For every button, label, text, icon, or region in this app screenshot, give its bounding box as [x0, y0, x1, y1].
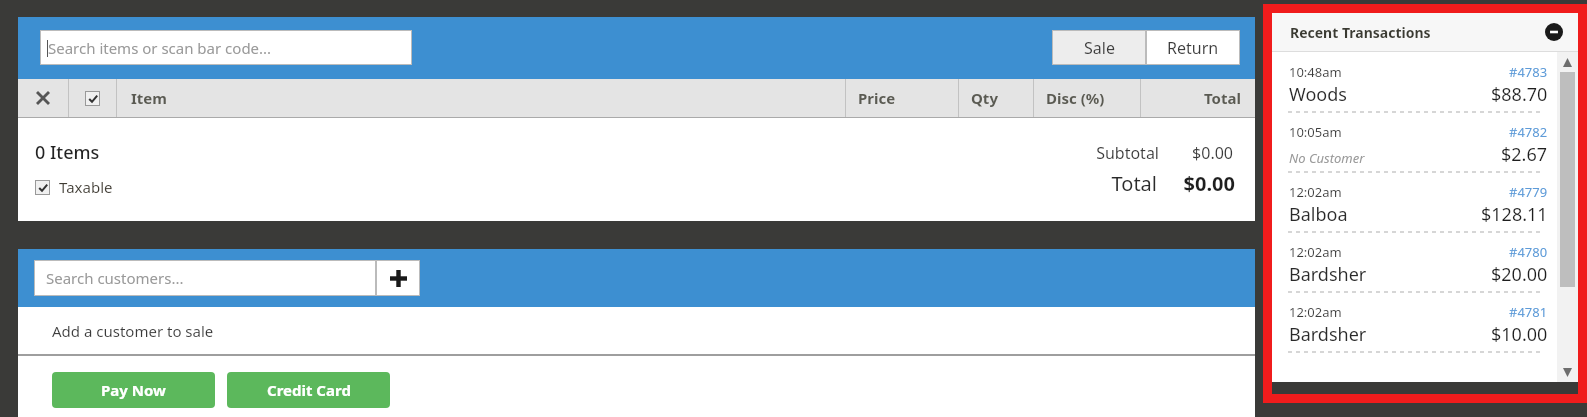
- staticText: #4781: [1509, 303, 1548, 321]
- staticText: Sale: [1084, 37, 1115, 59]
- staticText: No Customer: [1289, 149, 1365, 167]
- button[interactable]: Search items or scan bar code...: [40, 30, 412, 65]
- staticText: $0.00: [1157, 170, 1235, 197]
- staticText: #4782: [1509, 123, 1548, 141]
- button[interactable]: Pay Now: [52, 372, 215, 408]
- button[interactable]: [85, 91, 100, 106]
- button[interactable]: Credit Card: [227, 372, 390, 408]
- staticText: #4783: [1509, 63, 1548, 81]
- staticText: Balboa: [1289, 202, 1348, 227]
- staticText: Disc (%): [1046, 88, 1105, 108]
- staticText: 12:02am: [1289, 303, 1342, 321]
- staticText: Bardsher: [1289, 262, 1367, 287]
- staticText: $20.00: [1491, 262, 1548, 287]
- staticText: Pay Now: [101, 380, 166, 400]
- button[interactable]: 10:05am: [1272, 117, 1556, 177]
- staticText: $2.67: [1501, 142, 1548, 167]
- staticText: $128.11: [1481, 202, 1548, 227]
- staticText: Subtotal: [1009, 142, 1159, 164]
- button[interactable]: Search customers...: [34, 260, 376, 296]
- staticText: Recent Transactions: [1290, 23, 1431, 42]
- staticText: Return: [1167, 37, 1219, 59]
- button[interactable]: [35, 180, 50, 195]
- staticText: 12:02am: [1289, 243, 1342, 261]
- staticText: Total: [1009, 170, 1157, 197]
- staticText: 10:05am: [1289, 123, 1342, 141]
- staticText: Qty: [971, 88, 998, 108]
- button[interactable]: Add customer: [376, 260, 420, 296]
- button[interactable]: Sale: [1052, 30, 1146, 65]
- staticText: 0 Items: [35, 140, 100, 165]
- staticText: Price: [858, 88, 896, 108]
- staticText: $10.00: [1491, 322, 1548, 347]
- staticText: Total: [1204, 88, 1241, 108]
- staticText: Bardsher: [1289, 322, 1367, 347]
- staticText: Search items or scan bar code...: [48, 38, 272, 58]
- button[interactable]: 12:02am: [1272, 237, 1556, 297]
- staticText: Search customers...: [46, 268, 184, 288]
- button[interactable]: Return: [1146, 30, 1240, 65]
- button[interactable]: 12:02am: [1272, 297, 1556, 357]
- staticText: 10:48am: [1289, 63, 1342, 81]
- staticText: $88.70: [1491, 82, 1548, 107]
- button[interactable]: 10:48am: [1272, 57, 1556, 117]
- staticText: Item: [131, 88, 167, 108]
- staticText: Add a customer to sale: [52, 321, 214, 341]
- staticText: #4780: [1509, 243, 1548, 261]
- staticText: Credit Card: [267, 380, 351, 400]
- button[interactable]: 12:02am: [1272, 177, 1556, 237]
- staticText: $0.00: [1159, 142, 1233, 164]
- staticText: 12:02am: [1289, 183, 1342, 201]
- staticText: Taxable: [59, 177, 113, 197]
- staticText: Woods: [1289, 82, 1347, 107]
- button[interactable]: Collapse: [1544, 22, 1564, 42]
- staticText: #4779: [1509, 183, 1548, 201]
